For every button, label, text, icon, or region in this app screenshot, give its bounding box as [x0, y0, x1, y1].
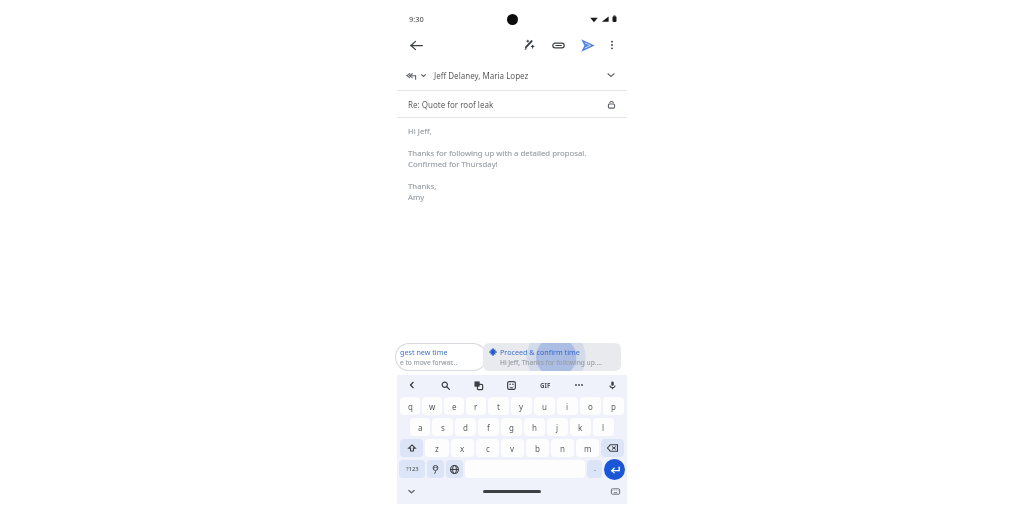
staticText: d: [463, 422, 468, 433]
button[interactable]: i: [557, 397, 578, 415]
button[interactable]: w: [422, 397, 442, 415]
button[interactable]: k: [570, 418, 591, 436]
button[interactable]: Re: Quote for roof leak: [397, 91, 627, 117]
staticText: Confirmed for Thursday!: [408, 159, 498, 170]
button[interactable]: Close toolbar: [404, 377, 420, 393]
staticText: b: [535, 443, 540, 454]
button[interactable]: ?123: [399, 460, 425, 478]
button[interactable]: Hide keyboard: [404, 484, 418, 498]
button[interactable]: Shift: [400, 439, 423, 457]
staticText: r: [474, 401, 478, 412]
button[interactable]: z: [425, 439, 449, 457]
button[interactable]: j: [547, 418, 568, 436]
button[interactable]: d: [455, 418, 476, 436]
button[interactable]: Change language: [446, 460, 463, 478]
staticText: h: [532, 422, 537, 433]
button[interactable]: Enter: [604, 459, 625, 480]
button[interactable]: a: [410, 418, 430, 436]
staticText: n: [560, 443, 565, 454]
button[interactable]: Backspace: [601, 439, 624, 457]
button[interactable]: l: [593, 418, 614, 436]
staticText: e: [452, 401, 457, 412]
button[interactable]: Search: [437, 377, 453, 393]
button[interactable]: e: [444, 397, 464, 415]
button[interactable]: t: [488, 397, 509, 415]
staticText: 9:30: [409, 14, 424, 24]
button[interactable]: c: [476, 439, 499, 457]
button[interactable]: Stickers: [503, 377, 519, 393]
staticText: t: [497, 401, 500, 412]
staticText: i: [566, 401, 569, 412]
button[interactable]: y: [511, 397, 532, 415]
staticText: k: [578, 422, 583, 433]
staticText: GIF: [540, 381, 551, 389]
button[interactable]: q: [400, 397, 420, 415]
button[interactable]: GIF: [536, 377, 554, 393]
staticText: Thanks for following up with a detailed …: [408, 148, 587, 159]
button[interactable]: More: [571, 377, 587, 393]
button[interactable]: Format with AI: [518, 34, 540, 56]
staticText: Jeff Delaney, Maria Lopez: [434, 70, 529, 81]
button[interactable]: Keyboard settings: [610, 486, 620, 496]
staticText: e to move forwar...: [400, 358, 458, 367]
button[interactable]: s: [432, 418, 453, 436]
button[interactable]: gest new time: [395, 343, 487, 371]
button[interactable]: n: [551, 439, 574, 457]
button[interactable]: m: [576, 439, 599, 457]
staticText: ?123: [406, 465, 419, 473]
staticText: q: [408, 401, 413, 412]
button[interactable]: Emoji: [427, 460, 444, 478]
staticText: p: [611, 401, 616, 412]
button[interactable]: Expand recipients: [601, 65, 621, 85]
button[interactable]: o: [580, 397, 601, 415]
button[interactable]: Voice input: [604, 377, 620, 393]
staticText: g: [509, 422, 514, 433]
button[interactable]: b: [526, 439, 549, 457]
button[interactable]: More options: [601, 34, 623, 56]
staticText: Hi Jeff, Thanks for following up....: [500, 358, 602, 367]
staticText: x: [460, 443, 465, 454]
button[interactable]: Hi Jeff,: [397, 118, 627, 339]
staticText: m: [584, 443, 592, 454]
staticText: Thanks,: [408, 181, 437, 192]
button[interactable]: r: [466, 397, 486, 415]
staticText: u: [542, 401, 547, 412]
button[interactable]: Attach file: [547, 34, 569, 56]
button[interactable]: .: [587, 460, 602, 478]
staticText: l: [602, 422, 605, 433]
staticText: f: [487, 422, 490, 433]
staticText: j: [556, 422, 559, 433]
staticText: Hi Jeff,: [408, 126, 432, 137]
staticText: Amy: [408, 192, 425, 203]
staticText: w: [429, 401, 436, 412]
button[interactable]: Proceed & confirm time: [483, 343, 621, 371]
button[interactable]: Send: [576, 34, 598, 56]
button[interactable]: Translate: [470, 377, 486, 393]
staticText: c: [486, 443, 490, 454]
button[interactable]: Back: [403, 32, 429, 58]
button[interactable]: p: [603, 397, 624, 415]
staticText: s: [441, 422, 445, 433]
button[interactable]: h: [524, 418, 545, 436]
staticText: v: [510, 443, 515, 454]
button[interactable]: u: [534, 397, 555, 415]
staticText: .: [594, 464, 596, 474]
staticText: Re: Quote for roof leak: [408, 99, 494, 110]
staticText: z: [435, 443, 439, 454]
staticText: Proceed & confirm time: [500, 347, 580, 357]
button[interactable]: Encryption: [602, 95, 620, 113]
staticText: a: [418, 422, 423, 433]
staticText: o: [588, 401, 593, 412]
button[interactable]: v: [501, 439, 524, 457]
staticText: gest new time: [400, 347, 448, 357]
button[interactable]: g: [501, 418, 522, 436]
button[interactable]: f: [478, 418, 499, 436]
button[interactable]: Jeff Delaney, Maria Lopez: [397, 60, 627, 90]
button[interactable]: x: [451, 439, 474, 457]
staticText: y: [519, 401, 524, 412]
